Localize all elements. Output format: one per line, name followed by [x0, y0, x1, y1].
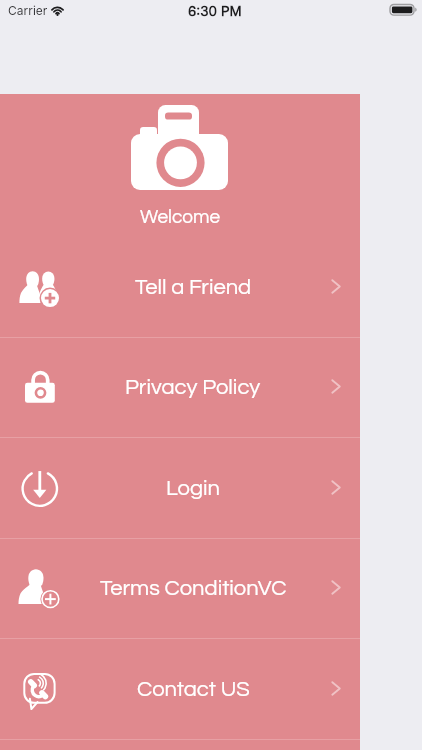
other: App logo [131, 105, 228, 190]
staticText: Login [166, 477, 220, 500]
button[interactable]: Terms ConditionVC [0, 539, 360, 640]
staticText: Tell a Friend [135, 276, 252, 299]
other: Battery [390, 4, 417, 16]
staticText: Privacy Policy [125, 376, 261, 399]
staticText: Terms ConditionVC [100, 577, 287, 600]
button[interactable]: Contact US [0, 640, 360, 741]
button[interactable]: Tell a Friend [0, 238, 360, 339]
staticText: 6:30 PM [188, 3, 242, 19]
staticText: Carrier [8, 3, 48, 18]
button[interactable]: Login [0, 439, 360, 540]
button[interactable]: Privacy Policy [0, 338, 360, 439]
staticText: Contact US [137, 678, 250, 701]
staticText: Welcome [0, 207, 360, 227]
other: Wi-Fi signal [51, 5, 64, 15]
